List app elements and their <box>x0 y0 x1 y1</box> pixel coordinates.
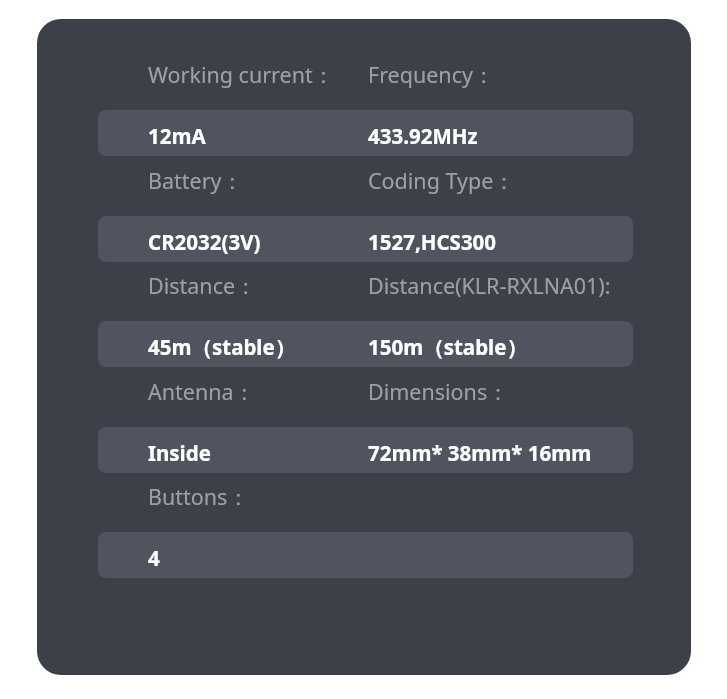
staticText: Coding Type： <box>368 166 515 195</box>
button[interactable] <box>98 110 633 156</box>
staticText: Antenna： <box>148 377 256 406</box>
staticText: CR2032(3V) <box>148 228 261 256</box>
staticText: 72mm* 38mm* 16mm <box>368 439 592 467</box>
staticText: Distance： <box>148 271 257 300</box>
staticText: 45m（stable） <box>148 333 296 361</box>
staticText: Dimensions： <box>368 377 509 406</box>
staticText: 150m（stable） <box>368 333 527 361</box>
button[interactable] <box>98 532 633 578</box>
staticText: 433.92MHz <box>368 122 478 150</box>
staticText: Battery： <box>148 166 244 195</box>
staticText: Frequency： <box>368 60 495 89</box>
button[interactable] <box>98 427 633 473</box>
button[interactable] <box>98 216 633 262</box>
button[interactable] <box>98 321 633 367</box>
staticText: 4 <box>148 544 160 572</box>
staticText: Buttons： <box>148 482 249 511</box>
staticText: Distance(KLR-RXLNA01): <box>368 271 611 300</box>
staticText: Inside <box>148 439 211 467</box>
staticText: 1527,HCS300 <box>368 228 497 256</box>
staticText: Working current： <box>148 60 335 89</box>
staticText: 12mA <box>148 122 206 150</box>
